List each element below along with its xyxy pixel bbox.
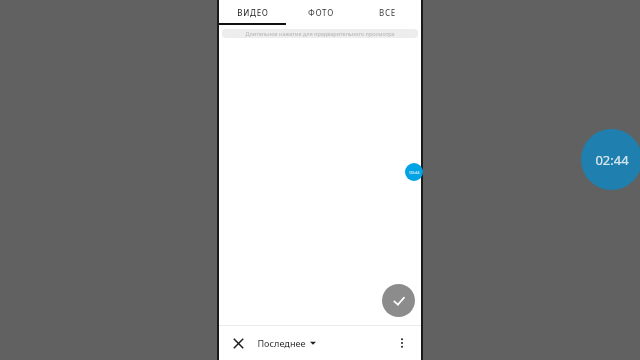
staticText: 02:44 [595, 151, 629, 169]
button[interactable]: ФОТО [287, 0, 354, 25]
button[interactable]: Последнее [257, 337, 316, 349]
staticText: ВСЕ [379, 7, 396, 18]
staticText: 02:44 [409, 170, 420, 175]
button[interactable]: Готово [382, 284, 415, 317]
staticText: ФОТО [308, 7, 334, 18]
button[interactable]: Закрыть [227, 332, 249, 354]
staticText: Длительное нажатие для предварительного … [245, 30, 395, 37]
button[interactable]: ВСЕ [354, 0, 421, 25]
button[interactable]: Ещё [391, 332, 413, 354]
staticText: Последнее [257, 337, 306, 349]
button[interactable]: ВИДЕО [219, 0, 287, 25]
staticText: ВИДЕО [237, 7, 269, 18]
